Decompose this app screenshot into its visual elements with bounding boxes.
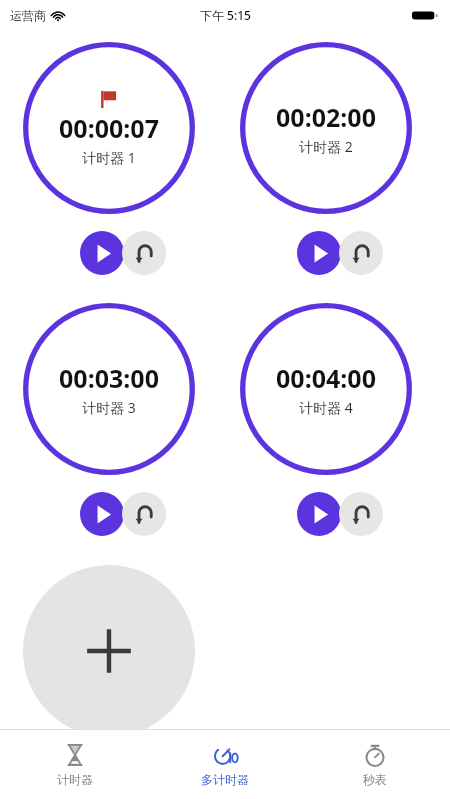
button[interactable]: 计时器 [0,730,150,799]
button[interactable]: Reset timer [339,492,383,536]
staticText: 计时器 4 [299,398,353,417]
staticText: 计时器 [57,772,93,787]
button[interactable]: 00:04:00 [240,303,412,475]
button[interactable]: 多计时器 [150,730,300,799]
button[interactable]: 00:02:00 [240,42,412,214]
button[interactable]: 秒表 [300,730,450,799]
staticText: 00:03:00 [59,361,159,395]
button[interactable]: 00:03:00 [23,303,195,475]
staticText: 计时器 3 [82,398,136,417]
staticText: 00:02:00 [276,100,376,134]
button[interactable]: Start timer [80,231,124,275]
staticText: 运营商 [10,8,46,23]
button[interactable]: Start timer [297,231,341,275]
button[interactable]: Add timer [23,565,195,737]
button[interactable]: Reset timer [122,231,166,275]
staticText: 秒表 [363,772,387,787]
staticText: 00:04:00 [276,361,376,395]
staticText: 00:00:07 [59,111,159,145]
staticText: 多计时器 [201,772,249,787]
button[interactable]: Reset timer [339,231,383,275]
staticText: 计时器 2 [299,137,353,156]
button[interactable]: 00:00:07 [23,42,195,214]
button[interactable]: Start timer [297,492,341,536]
staticText: 计时器 1 [82,148,136,167]
button[interactable]: Start timer [80,492,124,536]
staticText: 下午 5:15 [200,7,251,23]
button[interactable]: Reset timer [122,492,166,536]
